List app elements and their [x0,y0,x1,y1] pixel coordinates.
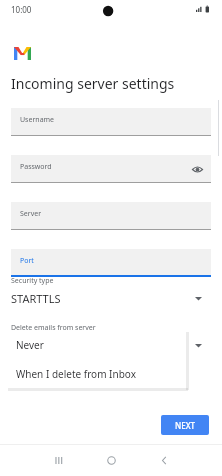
button[interactable]: When I delete from Inbox [6,359,186,388]
button[interactable]: Recent apps [40,444,76,476]
button[interactable]: NEXT [161,415,209,435]
staticText: Port [20,256,34,266]
button[interactable]: Port [11,249,211,277]
button[interactable]: Expand [189,289,207,307]
staticText: STARTTLS [11,291,61,306]
staticText: When I delete from Inbox [16,367,136,381]
button[interactable]: Show password [189,161,205,177]
button[interactable]: Expand [189,336,207,354]
staticText: 10:00 [11,4,32,15]
staticText: Server [20,209,42,219]
staticText: Username [20,115,55,125]
staticText: Security type [11,276,54,286]
staticText: NEXT [175,420,196,431]
staticText: Password [20,162,52,172]
button[interactable]: Server [11,202,211,230]
staticText: Incoming server settings [11,74,175,93]
button[interactable]: Home [93,444,129,476]
staticText: Delete emails from server [11,323,96,333]
button[interactable]: Back [146,444,182,476]
button[interactable]: Security type [11,276,211,306]
button[interactable]: Password [11,155,211,183]
staticText: Never [16,338,44,352]
button[interactable]: Username [11,108,211,136]
button[interactable]: Never [6,330,186,359]
